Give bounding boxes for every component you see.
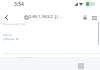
button[interactable]: Site information	[80, 13, 89, 22]
staticText: 24年1.36GI2 お…	[29, 14, 62, 20]
staticText: 3:54	[14, 1, 24, 8]
button[interactable]: ホームページはこちら	[3, 23, 26, 26]
button[interactable]: Back	[2, 13, 11, 22]
button[interactable]: お問合せ先一覧	[3, 38, 19, 41]
button[interactable]: Menu	[90, 13, 99, 22]
staticText: Copyright 2024	[18, 56, 33, 59]
button[interactable]: 24年1.36GI2 お…	[25, 14, 62, 20]
button[interactable]: お知らせ	[3, 34, 12, 37]
button[interactable]: Scroll to top	[78, 63, 84, 69]
